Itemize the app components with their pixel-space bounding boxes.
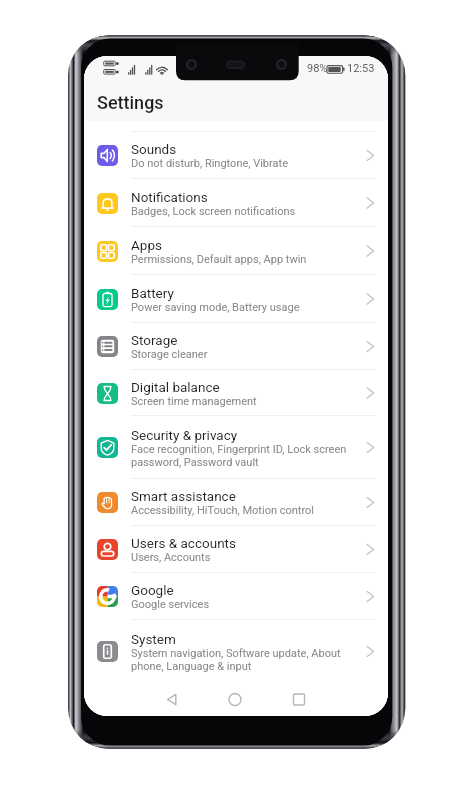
button[interactable]: Back	[152, 683, 192, 716]
staticText: Power saving mode, Battery usage	[131, 301, 300, 314]
button[interactable]: Users & accounts	[84, 526, 388, 573]
staticText: 12:53	[347, 62, 375, 75]
staticText: 98%	[307, 62, 328, 75]
staticText: Notifications	[131, 189, 208, 205]
staticText: Smart assistance	[131, 488, 236, 504]
staticText: Permissions, Default apps, App twin	[131, 253, 307, 266]
staticText: Sounds	[131, 141, 177, 157]
button[interactable]: Digital balance	[84, 370, 388, 416]
button[interactable]: Google	[84, 573, 388, 620]
button[interactable]: Sounds	[84, 132, 388, 179]
staticText: Do not disturb, Ringtone, Vibrate	[131, 157, 288, 170]
staticText: System	[131, 631, 176, 647]
staticText: Settings	[97, 92, 164, 113]
staticText: password, Password vault	[131, 456, 259, 469]
staticText: Screen time management	[131, 395, 257, 408]
staticText: Google services	[131, 598, 210, 611]
staticText: Users, Accounts	[131, 551, 211, 564]
button[interactable]: Battery	[84, 275, 388, 323]
staticText: System navigation, Software update, Abou…	[131, 647, 341, 660]
staticText: Battery	[131, 285, 174, 301]
staticText: Apps	[131, 237, 162, 253]
staticText: Face recognition, Fingerprint ID, Lock s…	[131, 443, 347, 456]
staticText: phone, Language & input	[131, 660, 252, 673]
button[interactable]: Recent apps	[279, 683, 319, 716]
staticText: Google	[131, 582, 174, 598]
staticText: Users & accounts	[131, 535, 236, 551]
button[interactable]: Security & privacy	[84, 416, 388, 479]
button[interactable]: Smart assistance	[84, 479, 388, 526]
staticText: Storage cleaner	[131, 348, 208, 361]
staticText: Digital balance	[131, 379, 220, 395]
staticText: Storage	[131, 332, 178, 348]
button[interactable]: Home	[215, 683, 255, 716]
staticText: Security & privacy	[131, 427, 238, 443]
button[interactable]: Notifications	[84, 179, 388, 227]
staticText: Badges, Lock screen notifications	[131, 205, 296, 218]
button[interactable]: System	[84, 620, 388, 683]
button[interactable]: Apps	[84, 227, 388, 275]
button[interactable]: Storage	[84, 323, 388, 370]
staticText: Accessibility, HiTouch, Motion control	[131, 504, 314, 517]
